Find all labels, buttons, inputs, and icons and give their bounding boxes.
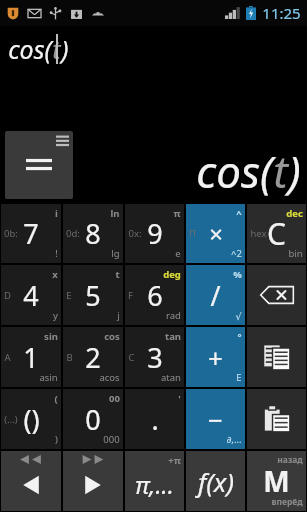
staticText: % [233, 268, 242, 281]
staticText: atan [161, 371, 181, 384]
staticText: 000 [103, 433, 120, 446]
button[interactable]: Copy [247, 327, 306, 387]
staticText: ' [178, 392, 181, 405]
button[interactable]: 00 [63, 389, 123, 449]
staticText: ) [288, 141, 301, 201]
staticText: C [267, 213, 286, 254]
staticText: ^2 [231, 247, 242, 260]
staticText: ∂,... [226, 433, 242, 446]
staticText: C [128, 351, 135, 364]
staticText: 00 [109, 392, 120, 405]
staticText: 0d: [66, 227, 80, 240]
staticText: + [208, 340, 223, 375]
staticText: A [4, 351, 11, 364]
staticText: sin [44, 330, 58, 343]
staticText: 1 [23, 339, 39, 376]
button[interactable]: x [1, 265, 61, 325]
button[interactable]: t [63, 265, 123, 325]
staticText: назад [277, 454, 303, 466]
staticText: вперёд [271, 496, 303, 508]
staticText: y [53, 309, 58, 322]
staticText: ) [55, 433, 58, 446]
button[interactable]: cos [63, 327, 123, 387]
staticText: 3 [147, 339, 163, 376]
staticText: M [263, 462, 290, 500]
button[interactable]: Backspace [247, 265, 306, 325]
staticText: t [115, 268, 120, 281]
button[interactable]: ° [186, 327, 245, 387]
staticText: ° [237, 330, 242, 343]
staticText: ^ [236, 207, 242, 220]
staticText: 8 [85, 215, 101, 252]
staticText: ln [110, 207, 120, 220]
staticText: (...) [4, 413, 18, 426]
staticText: cos( [8, 32, 52, 66]
staticText: cos( [196, 141, 273, 201]
staticText: 6 [147, 277, 163, 314]
button[interactable]: deg [125, 265, 184, 325]
staticText: E [236, 371, 242, 384]
staticText: t [273, 141, 288, 201]
button[interactable]: tan [125, 327, 184, 387]
staticText: 9 [147, 215, 163, 252]
staticText: / [210, 277, 221, 314]
staticText: hex [250, 227, 267, 240]
button[interactable]: % [186, 265, 245, 325]
staticText: x [52, 268, 58, 281]
button[interactable]: i [1, 204, 61, 263]
staticText: 4 [23, 277, 39, 314]
button[interactable]: sin [1, 327, 61, 387]
staticText: 7 [23, 215, 39, 252]
staticText: i [55, 207, 58, 220]
staticText: t [52, 32, 61, 66]
staticText: +π [168, 454, 181, 467]
staticText: tan [165, 330, 181, 343]
staticText: 0b: [4, 227, 18, 240]
button[interactable]: ' [125, 389, 184, 449]
staticText: 11:25 [262, 3, 301, 23]
staticText: − [208, 402, 223, 437]
button[interactable]: Move cursor right [63, 451, 123, 511]
staticText: lg [111, 247, 120, 260]
staticText: dec [286, 207, 303, 220]
button[interactable]: π [125, 204, 184, 263]
button[interactable]: ( [1, 389, 61, 449]
staticText: rad [166, 309, 181, 322]
staticText: () [23, 401, 40, 438]
staticText: cos [104, 330, 120, 343]
button[interactable]: Paste [247, 389, 306, 449]
staticText: ) [61, 32, 69, 66]
staticText: π,... [135, 468, 174, 501]
staticText: 0x: [128, 227, 142, 240]
staticText: e [175, 247, 181, 260]
staticText: bin [288, 247, 303, 260]
staticText: Π [189, 227, 196, 240]
staticText: E [66, 289, 72, 302]
staticText: . [151, 401, 159, 438]
button[interactable]: Equals [5, 131, 73, 199]
button[interactable]: ln [63, 204, 123, 263]
button[interactable]: ∂,... [186, 389, 245, 449]
button[interactable]: dec [247, 204, 306, 263]
staticText: D [4, 289, 11, 302]
staticText: f(x) [198, 464, 234, 499]
staticText: √ [235, 311, 242, 322]
button[interactable]: +π [125, 451, 184, 511]
staticText: deg [163, 268, 181, 281]
button[interactable]: f(x) [186, 451, 245, 511]
staticText: B [66, 351, 73, 364]
staticText: F [128, 289, 133, 302]
staticText: 0 [85, 401, 101, 438]
button[interactable]: ^ [186, 204, 245, 263]
staticText: π [173, 207, 181, 220]
staticText: 2 [85, 339, 101, 376]
button[interactable]: Move cursor left [1, 451, 61, 511]
staticText: acos [99, 371, 120, 384]
staticText: × [209, 217, 223, 250]
staticText: 5 [85, 277, 101, 314]
staticText: ! [55, 247, 58, 260]
button[interactable]: назад [247, 451, 306, 511]
staticText: ( [54, 392, 58, 405]
staticText: j [117, 309, 120, 322]
staticText: asin [39, 371, 58, 384]
